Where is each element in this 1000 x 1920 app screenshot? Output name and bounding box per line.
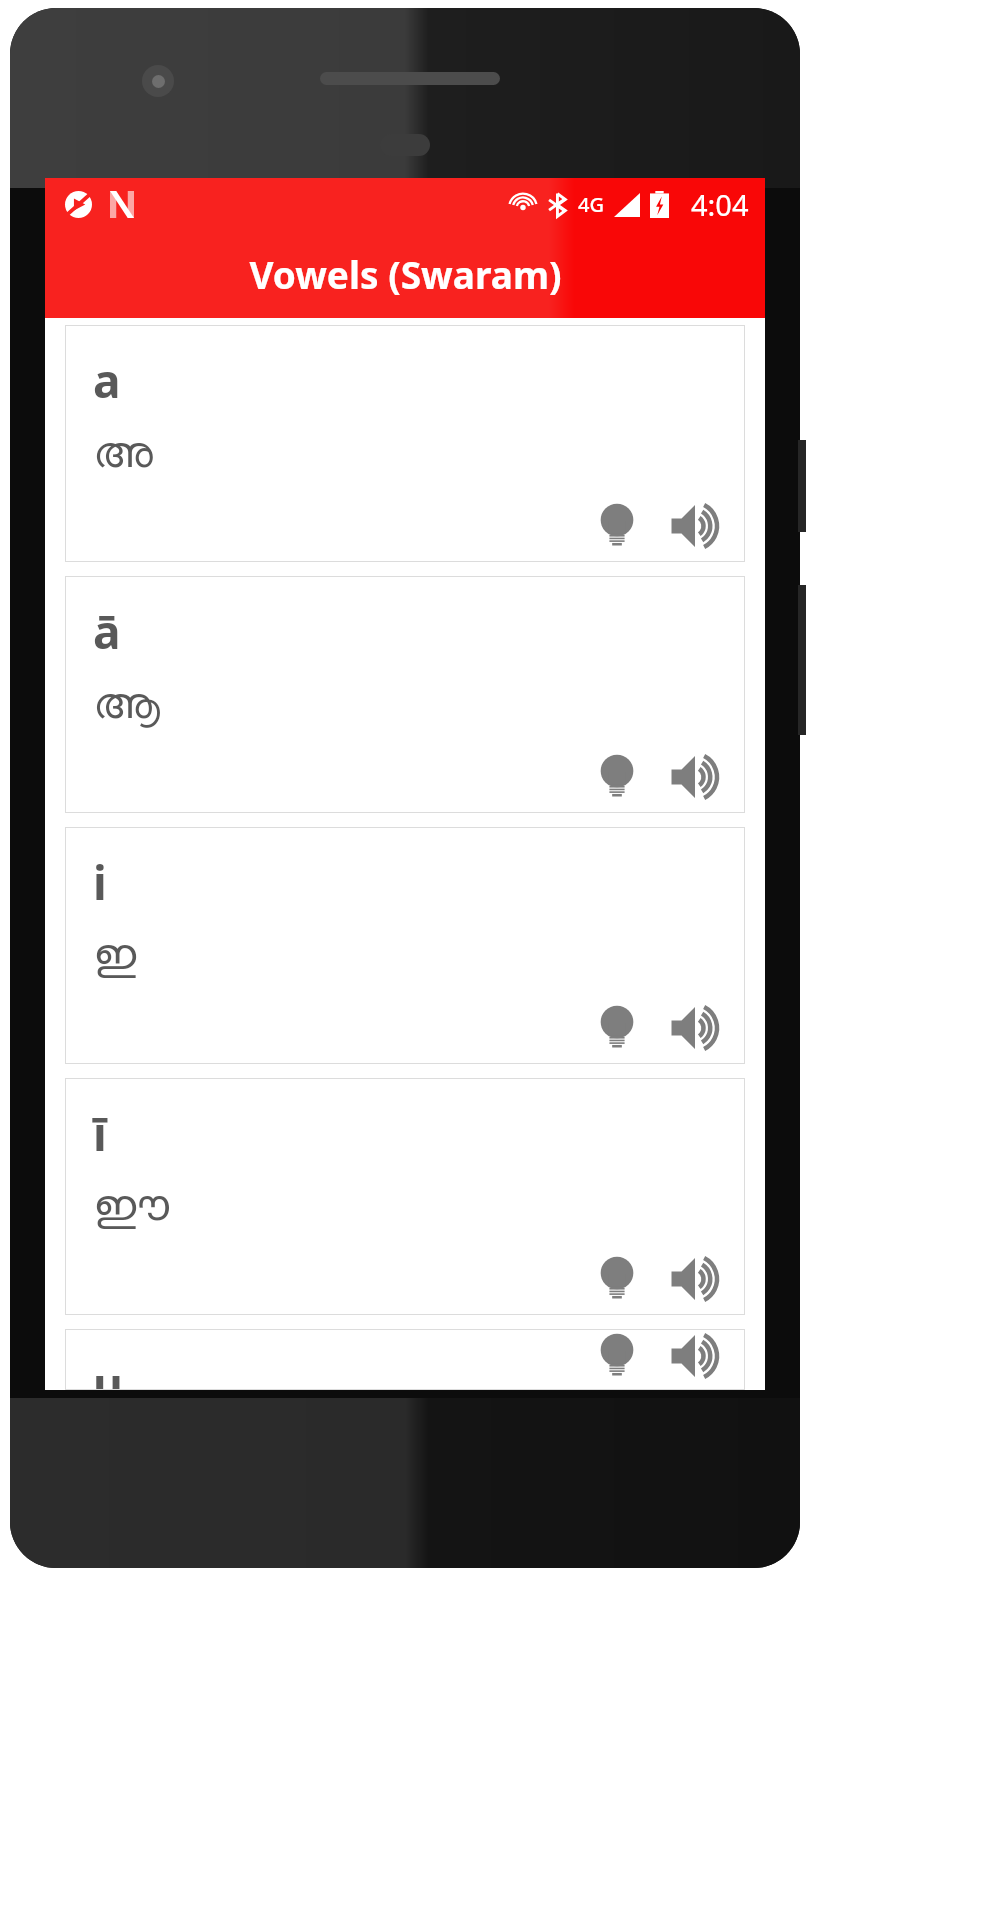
button[interactable]: i — [65, 827, 745, 1064]
staticText: ആ — [93, 683, 160, 727]
button[interactable]: Show hint — [591, 1253, 643, 1305]
button[interactable]: Play pronunciation — [667, 1251, 723, 1307]
button[interactable]: Play pronunciation — [667, 498, 723, 554]
staticText: ഇ — [93, 934, 137, 978]
button[interactable]: Play pronunciation — [667, 1329, 723, 1382]
button[interactable]: u — [65, 1329, 745, 1390]
button[interactable]: Show hint — [591, 1002, 643, 1054]
staticText: a — [93, 349, 121, 412]
button[interactable]: Show hint — [591, 1330, 643, 1382]
staticText: അ — [93, 432, 153, 476]
button[interactable]: Play pronunciation — [667, 1000, 723, 1056]
button[interactable]: Play pronunciation — [667, 749, 723, 805]
staticText: 4G — [578, 191, 604, 218]
staticText: i — [93, 851, 107, 914]
staticText: Vowels (Swaram) — [249, 249, 562, 299]
button[interactable]: ī — [65, 1078, 745, 1315]
staticText: u — [93, 1353, 123, 1390]
staticText: ഈ — [93, 1185, 170, 1229]
staticText: ā — [93, 600, 121, 663]
button[interactable]: Show hint — [591, 500, 643, 552]
staticText: 4:04 — [691, 185, 749, 224]
button[interactable]: Show hint — [591, 751, 643, 803]
button[interactable]: ā — [65, 576, 745, 813]
staticText: ī — [93, 1102, 107, 1165]
button[interactable]: a — [65, 325, 745, 562]
